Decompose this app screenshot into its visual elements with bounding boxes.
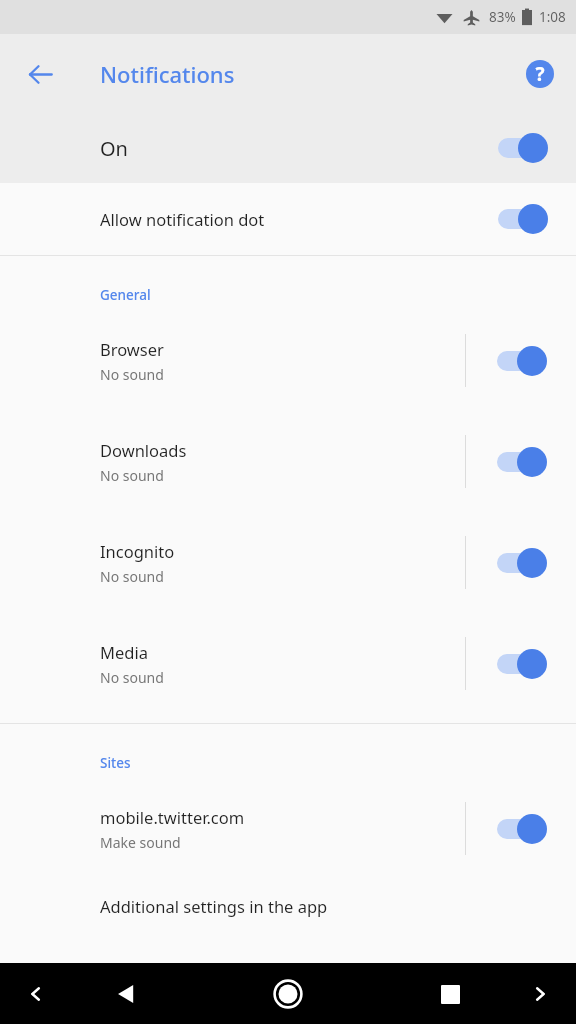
button[interactable]: Toggle Downloads xyxy=(466,411,576,512)
staticText: Browser xyxy=(100,338,164,360)
button[interactable]: Previous xyxy=(14,972,58,1016)
button[interactable]: Next xyxy=(518,972,562,1016)
staticText: General xyxy=(100,286,151,304)
staticText: No sound xyxy=(100,466,164,485)
staticText: No sound xyxy=(100,567,164,586)
button[interactable]: Toggle mobile.twitter.com xyxy=(466,778,576,879)
button[interactable]: Recents xyxy=(427,971,473,1017)
staticText: 1:08 xyxy=(539,8,566,26)
staticText: Media xyxy=(100,641,148,663)
staticText: Sites xyxy=(100,754,131,772)
staticText: mobile.twitter.com xyxy=(100,806,245,828)
staticText: Incognito xyxy=(100,540,175,562)
staticText: Additional settings in the app xyxy=(100,895,328,917)
button[interactable]: Help xyxy=(518,52,562,96)
button[interactable]: Toggle Incognito xyxy=(466,512,576,613)
button[interactable]: mobile.twitter.com xyxy=(0,778,465,879)
staticText: No sound xyxy=(100,365,164,384)
button[interactable]: Toggle Browser xyxy=(466,310,576,411)
button[interactable]: On xyxy=(0,113,576,183)
staticText: Make sound xyxy=(100,833,181,852)
button[interactable]: Home xyxy=(263,969,313,1019)
button[interactable]: Back xyxy=(103,971,149,1017)
button[interactable]: Downloads xyxy=(0,411,465,512)
button[interactable]: Allow notification dot xyxy=(0,183,576,255)
staticText: No sound xyxy=(100,668,164,687)
staticText: Downloads xyxy=(100,439,187,461)
button[interactable]: Media xyxy=(0,613,465,714)
staticText: Notifications xyxy=(100,59,235,89)
button[interactable]: Additional settings in the app xyxy=(0,879,576,933)
staticText: ? xyxy=(535,61,545,87)
button[interactable]: Browser xyxy=(0,310,465,411)
staticText: Allow notification dot xyxy=(100,208,265,230)
button[interactable]: Incognito xyxy=(0,512,465,613)
button[interactable]: Toggle Media xyxy=(466,613,576,714)
button[interactable]: Back xyxy=(17,51,63,97)
staticText: On xyxy=(100,135,128,162)
staticText: 83% xyxy=(489,8,516,26)
